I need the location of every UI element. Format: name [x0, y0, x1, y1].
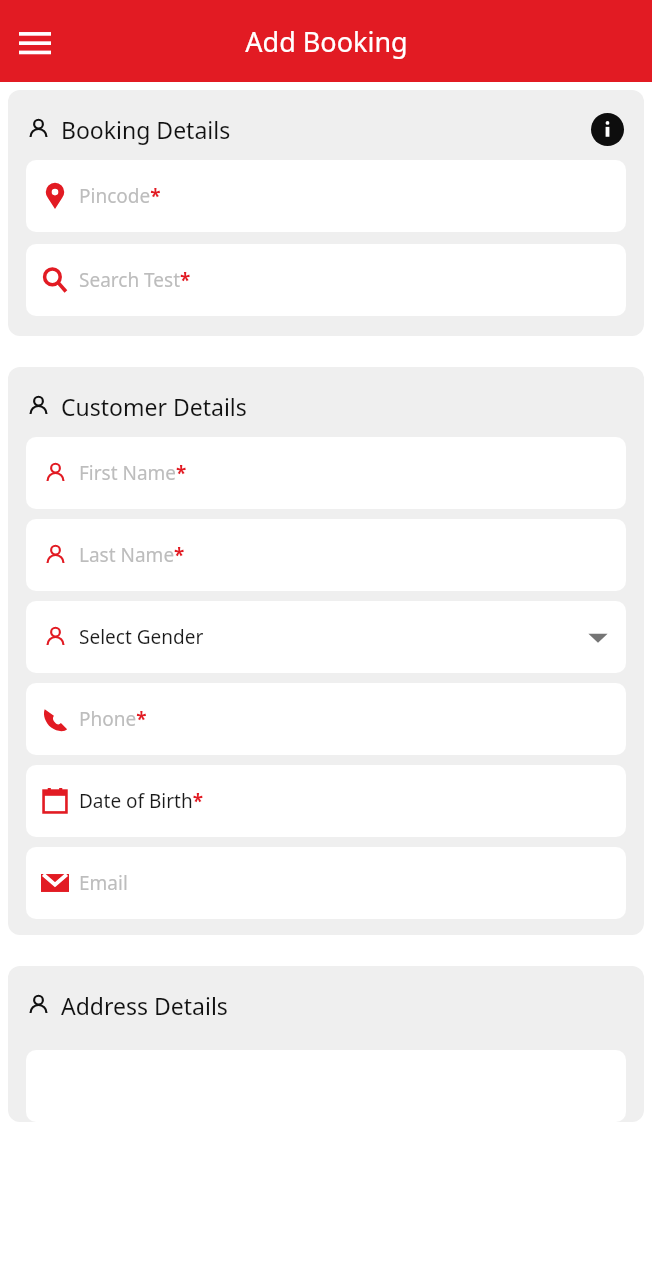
button[interactable]: Information — [589, 111, 626, 148]
staticText: Booking Details — [61, 114, 231, 145]
button[interactable]: Pincode* — [26, 160, 626, 232]
button[interactable]: Date of Birth* — [26, 765, 626, 837]
staticText: Last Name* — [79, 542, 185, 568]
button[interactable]: Last Name* — [26, 519, 626, 591]
other: Open dropdown — [586, 625, 610, 649]
button[interactable]: Open navigation menu — [14, 20, 56, 62]
staticText: Search Test* — [79, 267, 191, 293]
staticText: First Name* — [79, 460, 187, 486]
staticText: Email — [79, 870, 128, 896]
staticText: Add Booking — [245, 23, 408, 60]
button[interactable]: Search Test* — [26, 244, 626, 316]
staticText: Customer Details — [61, 391, 247, 422]
button[interactable]: Select Gender — [26, 601, 626, 673]
staticText: Pincode* — [79, 183, 161, 209]
staticText: Address Details — [61, 990, 228, 1021]
staticText: Date of Birth* — [79, 788, 204, 814]
staticText: Phone* — [79, 706, 147, 732]
button[interactable]: Email — [26, 847, 626, 919]
staticText: Select Gender — [79, 624, 204, 650]
button[interactable]: First Name* — [26, 437, 626, 509]
button[interactable]: Phone* — [26, 683, 626, 755]
